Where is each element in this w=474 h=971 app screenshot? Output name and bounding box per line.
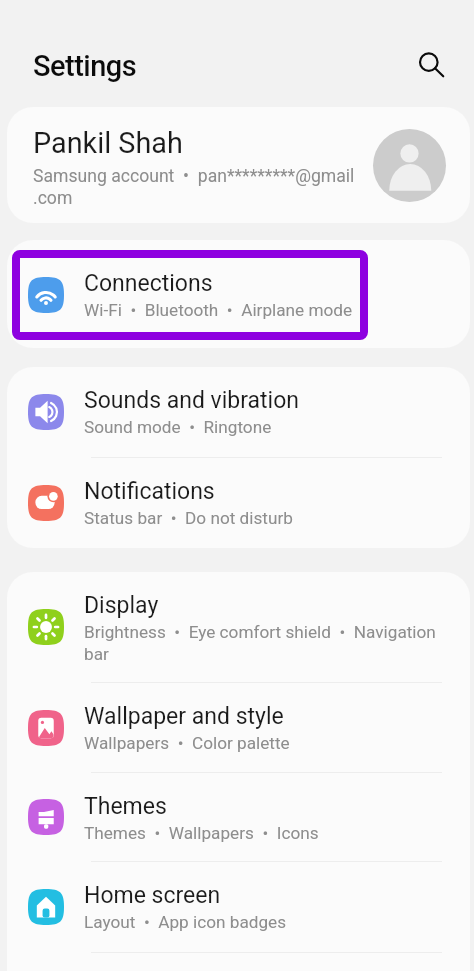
staticText: Samsung account • pan*********@gmail .co… (33, 165, 355, 209)
staticText: Status bar • Do not disturb (84, 507, 293, 529)
staticText: Wallpapers • Color palette (84, 732, 290, 754)
staticText: Brightness • Eye comfort shield • Naviga… (84, 621, 448, 665)
staticText: Themes (84, 795, 167, 819)
staticText: Layout • App icon badges (84, 911, 287, 933)
button[interactable]: Search (408, 42, 454, 88)
button[interactable]: Pankil Shah (7, 107, 470, 223)
staticText: Connections (84, 272, 213, 296)
button[interactable]: Display (7, 572, 470, 683)
button[interactable]: Connections (7, 250, 470, 340)
staticText: Settings (33, 49, 137, 83)
staticText: Wallpaper and style (84, 705, 284, 729)
staticText: Sound mode • Ringtone (84, 416, 272, 438)
staticText: Pankil Shah (33, 128, 183, 160)
staticText: Display (84, 594, 159, 618)
staticText: Notifications (84, 480, 215, 504)
button[interactable]: Wallpaper and style (7, 683, 470, 773)
button[interactable]: Themes (7, 773, 470, 862)
staticText: Wi-Fi • Bluetooth • Airplane mode (84, 299, 353, 321)
staticText: Sounds and vibration (84, 389, 300, 413)
staticText: Home screen (84, 884, 221, 908)
button[interactable]: Home screen (7, 862, 470, 953)
button[interactable]: Sounds and vibration (7, 367, 470, 458)
staticText: Themes • Wallpapers • Icons (84, 822, 319, 844)
button[interactable]: Notifications (7, 458, 470, 548)
